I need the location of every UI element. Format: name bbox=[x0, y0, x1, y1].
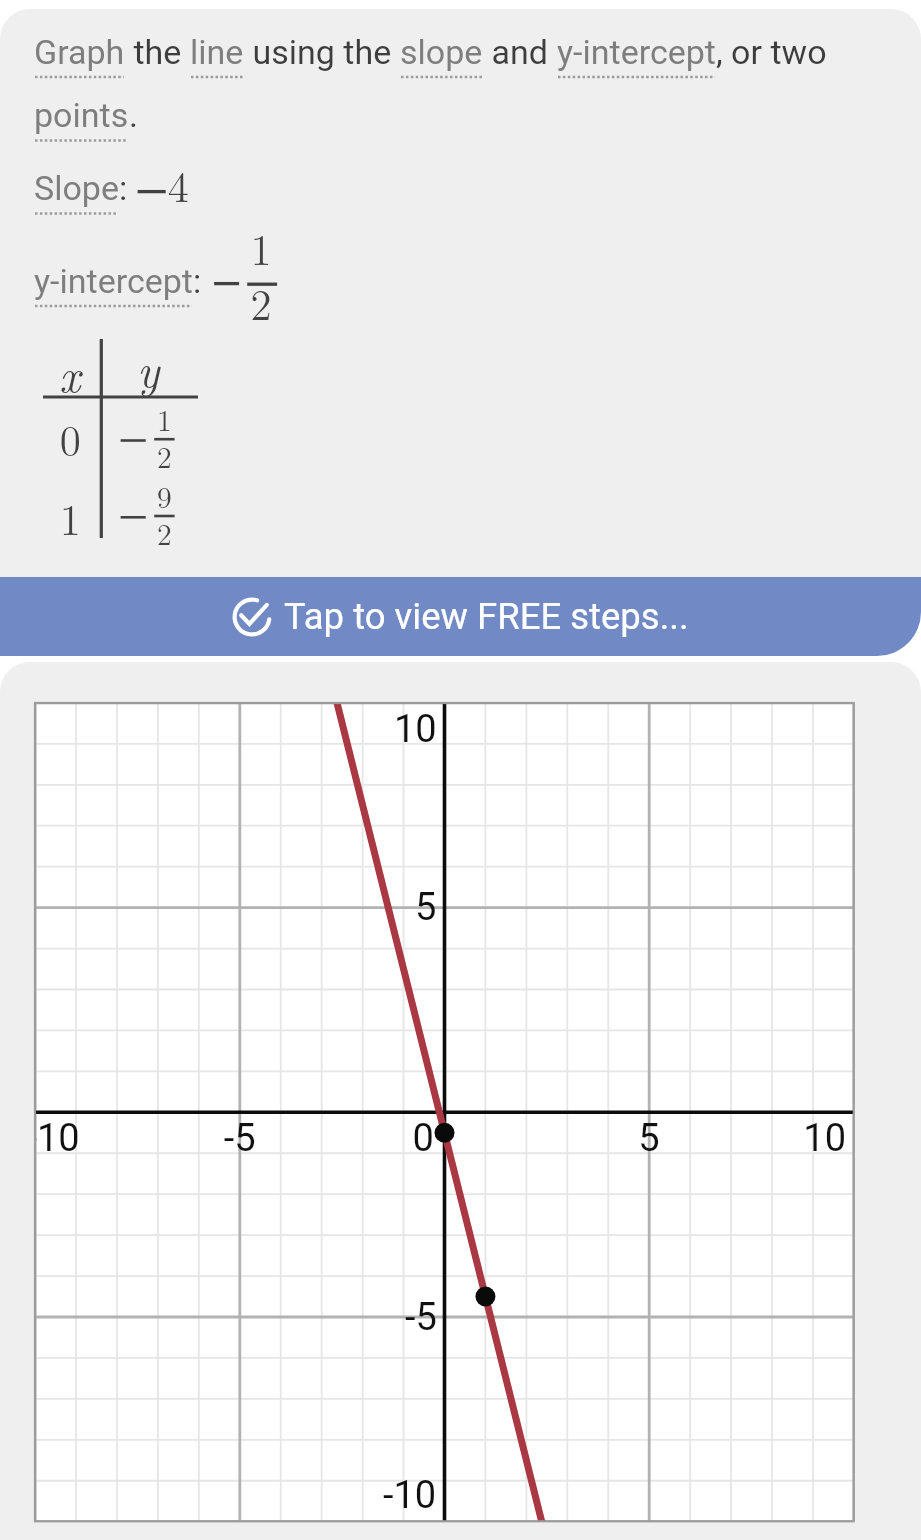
staticText: Tap to view FREE steps... bbox=[284, 595, 689, 638]
button[interactable]: View free steps bbox=[0, 577, 921, 656]
button[interactable] bbox=[0, 9, 921, 578]
other: View free steps bbox=[232, 597, 272, 637]
